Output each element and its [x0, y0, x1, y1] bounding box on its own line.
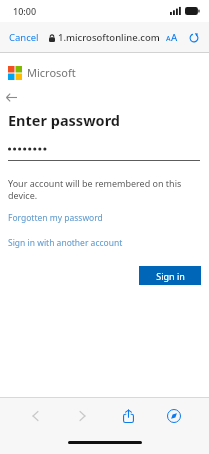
- button[interactable]: Forward: [59, 398, 105, 434]
- staticText: A: [166, 34, 171, 44]
- button[interactable]: Cancel: [0, 27, 43, 48]
- button[interactable]: Back: [12, 398, 59, 434]
- button[interactable]: Back: [6, 90, 24, 104]
- button[interactable]: [8, 142, 200, 155]
- staticText: Sign in: [156, 270, 185, 282]
- button[interactable]: Share: [105, 398, 151, 434]
- staticText: 10:00: [13, 5, 37, 17]
- staticText: 1.microsoftonline.com: [58, 31, 160, 44]
- staticText: Enter password: [8, 110, 120, 130]
- button[interactable]: Text size: [164, 29, 180, 46]
- staticText: Microsoft: [27, 65, 76, 80]
- button[interactable]: Open in Safari: [151, 398, 197, 434]
- button[interactable]: 1.microsoftonline.com: [49, 31, 160, 44]
- button[interactable]: Sign in: [139, 266, 201, 285]
- button[interactable]: Reload: [187, 31, 201, 45]
- button[interactable]: Sign in with another account: [0, 236, 123, 250]
- button[interactable]: Forgotten my password: [0, 211, 103, 225]
- staticText: Your account will be remembered on this …: [8, 177, 187, 202]
- staticText: A: [171, 31, 178, 44]
